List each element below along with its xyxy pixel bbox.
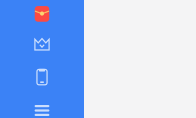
button[interactable]: Red envelope — [0, 0, 84, 28]
button[interactable]: My device — [0, 63, 84, 92]
button[interactable]: More — [0, 96, 84, 118]
button[interactable]: Membership — [0, 30, 84, 59]
